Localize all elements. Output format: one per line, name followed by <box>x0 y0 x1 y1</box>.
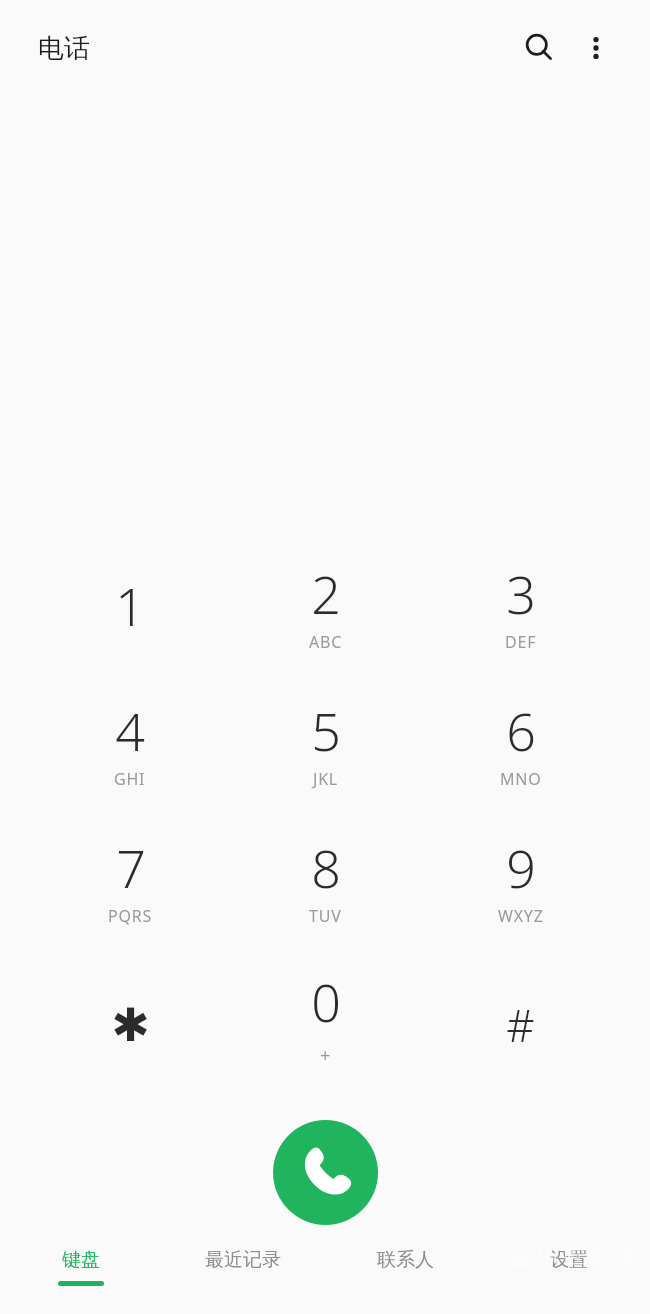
staticText: 6 <box>506 695 536 766</box>
staticText: 7 <box>116 832 146 903</box>
staticText: 键盘 <box>62 1248 100 1272</box>
staticText: 5 <box>311 695 341 766</box>
button[interactable]: Search <box>513 22 565 74</box>
staticText: PQRS <box>108 905 153 927</box>
button[interactable]: 3 <box>423 545 618 682</box>
staticText: ✱ <box>111 998 150 1052</box>
button[interactable]: 8 <box>228 819 423 956</box>
button[interactable]: 2 <box>228 545 423 682</box>
button[interactable]: 设置 <box>487 1232 650 1314</box>
staticText: 4 <box>115 695 145 766</box>
staticText: MNO <box>500 768 542 790</box>
staticText: 电话 <box>38 32 90 65</box>
button[interactable]: ✱ <box>32 956 228 1093</box>
button[interactable]: # <box>423 956 618 1093</box>
staticText: GHI <box>114 768 146 790</box>
staticText: 3 <box>506 558 536 629</box>
button[interactable]: 0 <box>228 956 423 1093</box>
staticText: TUV <box>309 905 342 927</box>
staticText: + <box>320 1043 332 1068</box>
staticText: DEF <box>505 631 537 653</box>
button[interactable]: 4 <box>32 682 228 819</box>
staticText: 盖乐世影像 <box>506 1239 641 1270</box>
staticText: ABC <box>309 631 343 653</box>
staticText: 8 <box>311 832 341 903</box>
staticText: 9 <box>506 832 536 903</box>
button[interactable]: 键盘 <box>0 1232 162 1314</box>
staticText: 1 <box>115 570 145 641</box>
button[interactable]: Call <box>273 1120 378 1225</box>
staticText: 设置 <box>550 1248 588 1272</box>
staticText: 联系人 <box>377 1248 434 1272</box>
button[interactable]: 9 <box>423 819 618 956</box>
button[interactable]: 1 <box>32 545 228 682</box>
staticText: JKL <box>313 768 339 790</box>
staticText: 0 <box>311 966 341 1037</box>
button[interactable]: 最近记录 <box>162 1232 324 1314</box>
button[interactable]: 6 <box>423 682 618 819</box>
button[interactable]: More options <box>570 22 622 74</box>
button[interactable]: 7 <box>32 819 228 956</box>
staticText: 2 <box>311 558 341 629</box>
staticText: 最近记录 <box>205 1248 281 1272</box>
staticText: # <box>506 995 535 1055</box>
staticText: WXYZ <box>498 905 544 927</box>
button[interactable]: 5 <box>228 682 423 819</box>
button[interactable]: 联系人 <box>324 1232 487 1314</box>
